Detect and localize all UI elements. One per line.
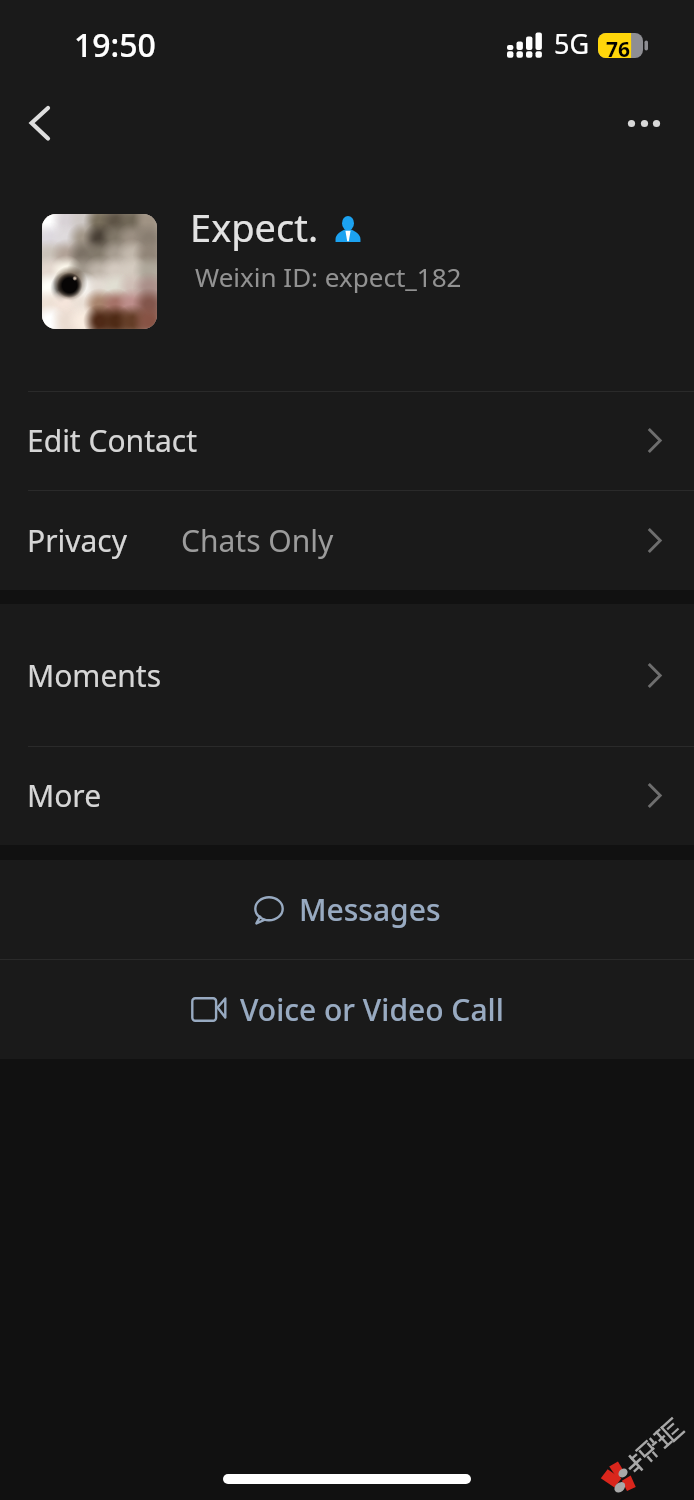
button[interactable]: More options bbox=[610, 90, 678, 158]
staticText: Weixin ID: expect_182 bbox=[195, 259, 462, 294]
staticText: Moments bbox=[27, 655, 162, 696]
staticText: 76 bbox=[606, 35, 631, 60]
button[interactable]: Voice or Video Call bbox=[0, 959, 694, 1059]
button[interactable]: Back bbox=[6, 89, 74, 157]
staticText: Edit Contact bbox=[27, 420, 198, 461]
button[interactable]: Edit Contact bbox=[0, 391, 694, 490]
staticText: 19:50 bbox=[74, 23, 156, 67]
staticText: 5G bbox=[554, 25, 590, 62]
staticText: Expect. bbox=[190, 201, 319, 253]
staticText: Privacy bbox=[27, 520, 128, 561]
staticText: Messages bbox=[299, 889, 441, 930]
button[interactable]: Moments bbox=[0, 604, 694, 746]
button[interactable]: Messages bbox=[0, 860, 694, 959]
staticText: Chats Only bbox=[181, 520, 334, 561]
button[interactable]: More bbox=[0, 746, 694, 845]
button[interactable]: Privacy bbox=[0, 490, 694, 590]
button[interactable]: Expect. bbox=[0, 180, 694, 370]
staticText: More bbox=[27, 775, 102, 816]
staticText: Voice or Video Call bbox=[240, 989, 504, 1030]
